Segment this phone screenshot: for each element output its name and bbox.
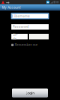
staticText: My Account: [1, 5, 20, 10]
button[interactable]: Password: [11, 24, 49, 30]
button[interactable]: Remember me: [11, 43, 49, 47]
staticText: Password: [13, 25, 29, 29]
button[interactable]: Username: [11, 13, 49, 19]
button[interactable]: Code: [11, 34, 28, 39]
staticText: Code: [13, 33, 18, 41]
button[interactable]: Refresh captcha: [29, 34, 49, 39]
staticText: Username: [14, 14, 30, 18]
staticText: Remember me: [15, 43, 38, 47]
staticText: Login: [25, 91, 34, 95]
button[interactable]: Login: [12, 88, 48, 97]
